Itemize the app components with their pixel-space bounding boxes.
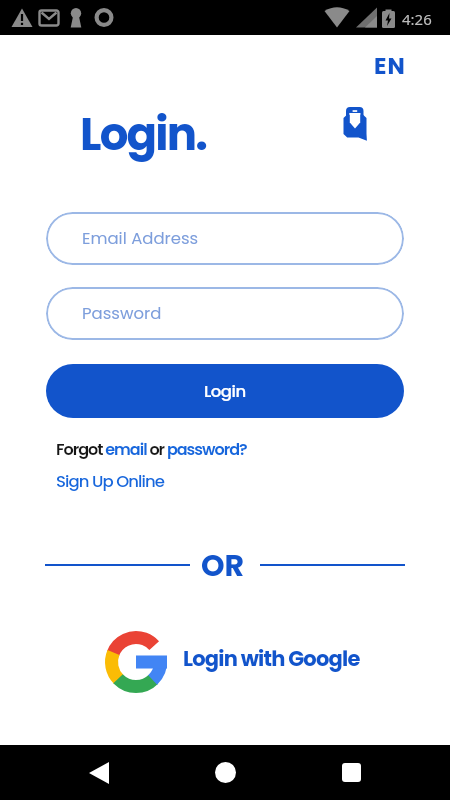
- staticText: Email Address: [82, 227, 199, 250]
- button[interactable]: [324, 745, 379, 800]
- staticText: OR: [201, 545, 245, 587]
- button[interactable]: [71, 745, 126, 800]
- button[interactable]: [198, 745, 253, 800]
- button[interactable]: Email Address: [46, 212, 404, 265]
- staticText: Login.: [80, 103, 207, 166]
- button[interactable]: Password: [46, 287, 404, 340]
- button[interactable]: Forgot email or password?: [56, 438, 247, 460]
- button[interactable]: Login: [46, 364, 404, 418]
- staticText: Login: [204, 380, 246, 403]
- button[interactable]: Sign Up Online: [56, 470, 165, 493]
- button[interactable]: EN: [374, 50, 406, 82]
- staticText: Password: [82, 302, 162, 325]
- button[interactable]: Login with Google: [100, 625, 365, 695]
- staticText: 4:26: [402, 9, 432, 29]
- staticText: Login with Google: [183, 644, 360, 673]
